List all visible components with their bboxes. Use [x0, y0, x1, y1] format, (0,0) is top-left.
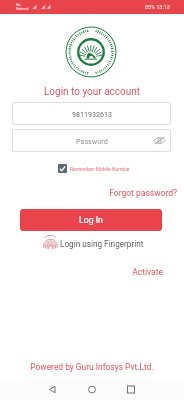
button[interactable]: 9811932613: [12, 102, 171, 125]
button[interactable]: Back: [40, 379, 64, 400]
staticText: Password: [76, 137, 108, 145]
staticText: Login using Fingerprint: [60, 239, 144, 249]
staticText: Powered by Guru Infosys Pvt.Ltd.: [0, 362, 184, 372]
button[interactable]: Login using Fingerprint: [43, 236, 144, 251]
staticText: Login to your account: [0, 86, 184, 98]
button[interactable]: Show password: [153, 134, 166, 147]
button[interactable]: Activate: [0, 267, 163, 277]
staticText: Remember Mobile Number: [70, 166, 130, 172]
button[interactable]: Remember Mobile Number: [58, 164, 130, 173]
button[interactable]: Password: [12, 129, 171, 152]
button[interactable]: Home: [80, 379, 104, 400]
staticText: Log In: [79, 215, 103, 225]
button[interactable]: Forgot password?: [0, 188, 177, 198]
button[interactable]: Log In: [20, 209, 162, 231]
staticText: Network: [16, 7, 29, 11]
staticText: No: [16, 3, 21, 7]
staticText: 9811932613: [72, 110, 112, 118]
button[interactable]: Recents: [119, 379, 143, 400]
staticText: 85% 13:13: [145, 4, 170, 10]
